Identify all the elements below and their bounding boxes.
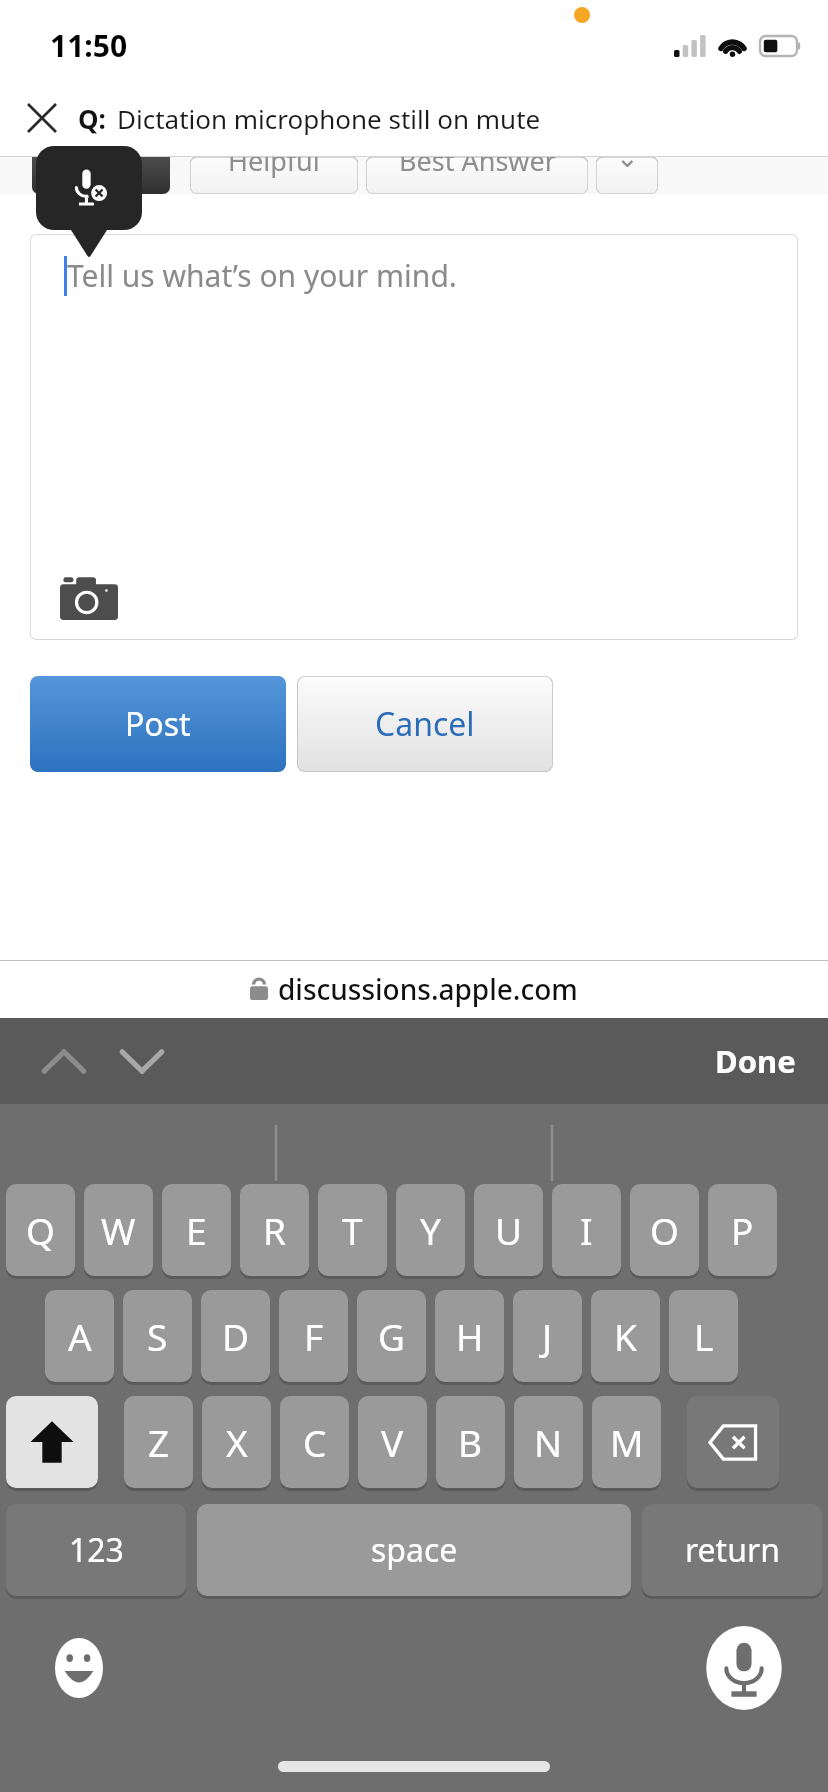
- button[interactable]: Reply: [32, 157, 170, 194]
- button[interactable]: Backspace: [687, 1396, 779, 1488]
- button[interactable]: Post: [30, 676, 286, 772]
- button[interactable]: Q: [6, 1184, 75, 1276]
- staticText: ⌄: [616, 157, 639, 173]
- button[interactable]: Next field: [108, 1030, 176, 1092]
- staticText: Done: [715, 1040, 796, 1082]
- staticText: J: [542, 1311, 553, 1361]
- staticText: Post: [125, 702, 191, 746]
- staticText: C: [303, 1417, 327, 1467]
- staticText: U: [495, 1205, 523, 1255]
- button[interactable]: D: [201, 1290, 270, 1382]
- button[interactable]: discussions.apple.com: [250, 970, 578, 1008]
- button[interactable]: X: [202, 1396, 271, 1488]
- button[interactable]: I: [552, 1184, 621, 1276]
- staticText: E: [186, 1205, 207, 1255]
- staticText: S: [147, 1311, 168, 1361]
- staticText: A: [68, 1311, 92, 1361]
- button[interactable]: G: [357, 1290, 426, 1382]
- staticText: V: [381, 1417, 404, 1467]
- staticText: 11:50: [50, 25, 128, 66]
- staticText: return: [685, 1528, 780, 1572]
- staticText: discussions.apple.com: [278, 970, 578, 1008]
- button[interactable]: A: [45, 1290, 114, 1382]
- button[interactable]: Dictation: [700, 1624, 788, 1712]
- button[interactable]: Done: [715, 1040, 796, 1082]
- staticText: H: [456, 1311, 484, 1361]
- staticText: Q:: [78, 101, 106, 136]
- staticText: Helpful: [228, 157, 320, 179]
- staticText: Cancel: [375, 702, 475, 746]
- button[interactable]: R: [240, 1184, 309, 1276]
- button[interactable]: L: [669, 1290, 738, 1382]
- button[interactable]: Previous field: [30, 1030, 98, 1092]
- staticText: R: [263, 1205, 287, 1255]
- button[interactable]: Y: [396, 1184, 465, 1276]
- button[interactable]: F: [279, 1290, 348, 1382]
- button[interactable]: 123: [6, 1504, 186, 1596]
- staticText: G: [378, 1311, 405, 1361]
- staticText: I: [580, 1205, 593, 1255]
- staticText: F: [304, 1311, 324, 1361]
- button[interactable]: Z: [124, 1396, 193, 1488]
- staticText: M: [610, 1417, 644, 1467]
- staticText: 123: [69, 1528, 124, 1572]
- button[interactable]: M: [592, 1396, 661, 1488]
- staticText: space: [371, 1528, 458, 1572]
- staticText: Y: [420, 1205, 441, 1255]
- staticText: L: [694, 1311, 714, 1361]
- button[interactable]: Dictation muted: [36, 146, 142, 230]
- button[interactable]: U: [474, 1184, 543, 1276]
- button[interactable]: space: [197, 1504, 631, 1596]
- staticText: W: [101, 1205, 136, 1255]
- button[interactable]: Best Answer: [366, 157, 588, 194]
- button[interactable]: Emoji: [45, 1634, 113, 1702]
- button[interactable]: Helpful: [190, 157, 358, 194]
- button[interactable]: Tell us what’s on your mind.: [30, 234, 798, 640]
- staticText: X: [226, 1417, 248, 1467]
- staticText: D: [222, 1311, 250, 1361]
- button[interactable]: P: [708, 1184, 777, 1276]
- button[interactable]: Cancel: [297, 676, 553, 772]
- staticText: O: [650, 1205, 679, 1255]
- staticText: Tell us what’s on your mind.: [67, 255, 457, 296]
- staticText: T: [342, 1205, 363, 1255]
- button[interactable]: K: [591, 1290, 660, 1382]
- staticText: Reply: [66, 157, 136, 179]
- button[interactable]: ⌄: [596, 157, 658, 194]
- button[interactable]: C: [280, 1396, 349, 1488]
- staticText: Z: [148, 1417, 170, 1467]
- staticText: N: [534, 1417, 563, 1467]
- button[interactable]: Close: [16, 92, 68, 144]
- button[interactable]: B: [436, 1396, 505, 1488]
- button[interactable]: T: [318, 1184, 387, 1276]
- button[interactable]: Add photo: [56, 572, 122, 624]
- staticText: B: [458, 1417, 483, 1467]
- staticText: Dictation microphone still on mute: [117, 101, 541, 136]
- staticText: K: [614, 1311, 637, 1361]
- button[interactable]: W: [84, 1184, 153, 1276]
- staticText: Best Answer: [399, 157, 556, 179]
- button[interactable]: H: [435, 1290, 504, 1382]
- staticText: P: [731, 1205, 754, 1255]
- button[interactable]: E: [162, 1184, 231, 1276]
- button[interactable]: J: [513, 1290, 582, 1382]
- button[interactable]: Shift: [6, 1396, 98, 1488]
- button[interactable]: return: [642, 1504, 822, 1596]
- button[interactable]: V: [358, 1396, 427, 1488]
- button[interactable]: S: [123, 1290, 192, 1382]
- staticText: Q: [26, 1205, 55, 1255]
- button[interactable]: N: [514, 1396, 583, 1488]
- button[interactable]: O: [630, 1184, 699, 1276]
